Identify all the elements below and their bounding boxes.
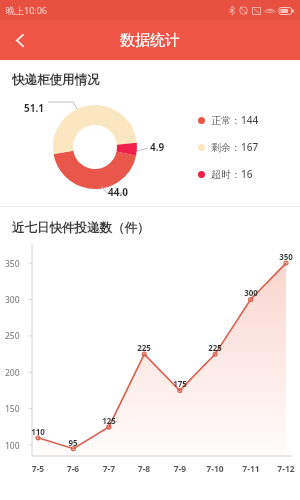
staticText: 95 — [62, 437, 84, 448]
staticText: 7-7 — [98, 463, 120, 475]
button[interactable]: 返回 — [0, 20, 40, 60]
staticText: 数据统计 — [120, 31, 180, 50]
staticText: 225 — [204, 342, 226, 353]
staticText: 7-8 — [133, 463, 155, 475]
staticText: 晚上10:06 — [6, 4, 48, 16]
staticText: 4.9 — [150, 140, 165, 154]
staticText: 快递柜使用情况 — [12, 72, 100, 88]
staticText: 近七日快件投递数（件） — [12, 220, 150, 236]
staticText: 110 — [27, 426, 49, 437]
staticText: 7-10 — [204, 463, 226, 475]
staticText: 100 — [5, 440, 20, 452]
staticText: 7-5 — [27, 463, 49, 475]
staticText: 7-9 — [169, 463, 191, 475]
staticText: 51.1 — [24, 101, 44, 115]
staticText: 44.0 — [108, 185, 128, 199]
staticText: 300 — [5, 294, 20, 306]
staticText: 350 — [275, 251, 297, 262]
staticText: 350 — [5, 258, 20, 270]
staticText: 250 — [5, 330, 20, 342]
staticText: 超时：16 — [211, 167, 253, 181]
staticText: 300 — [240, 287, 262, 298]
staticText: 150 — [5, 403, 20, 415]
staticText: 剩余：167 — [211, 140, 259, 154]
staticText: 正常：144 — [211, 113, 259, 127]
staticText: 125 — [98, 415, 120, 426]
button[interactable]: 超时：16 — [198, 167, 253, 181]
staticText: 7-11 — [240, 463, 262, 475]
staticText: 7-12 — [275, 463, 297, 475]
staticText: 175 — [169, 378, 191, 389]
staticText: 7-6 — [62, 463, 84, 475]
staticText: 225 — [133, 342, 155, 353]
staticText: 200 — [5, 367, 20, 379]
button[interactable]: 剩余：167 — [198, 140, 259, 154]
button[interactable]: 正常：144 — [198, 113, 259, 127]
